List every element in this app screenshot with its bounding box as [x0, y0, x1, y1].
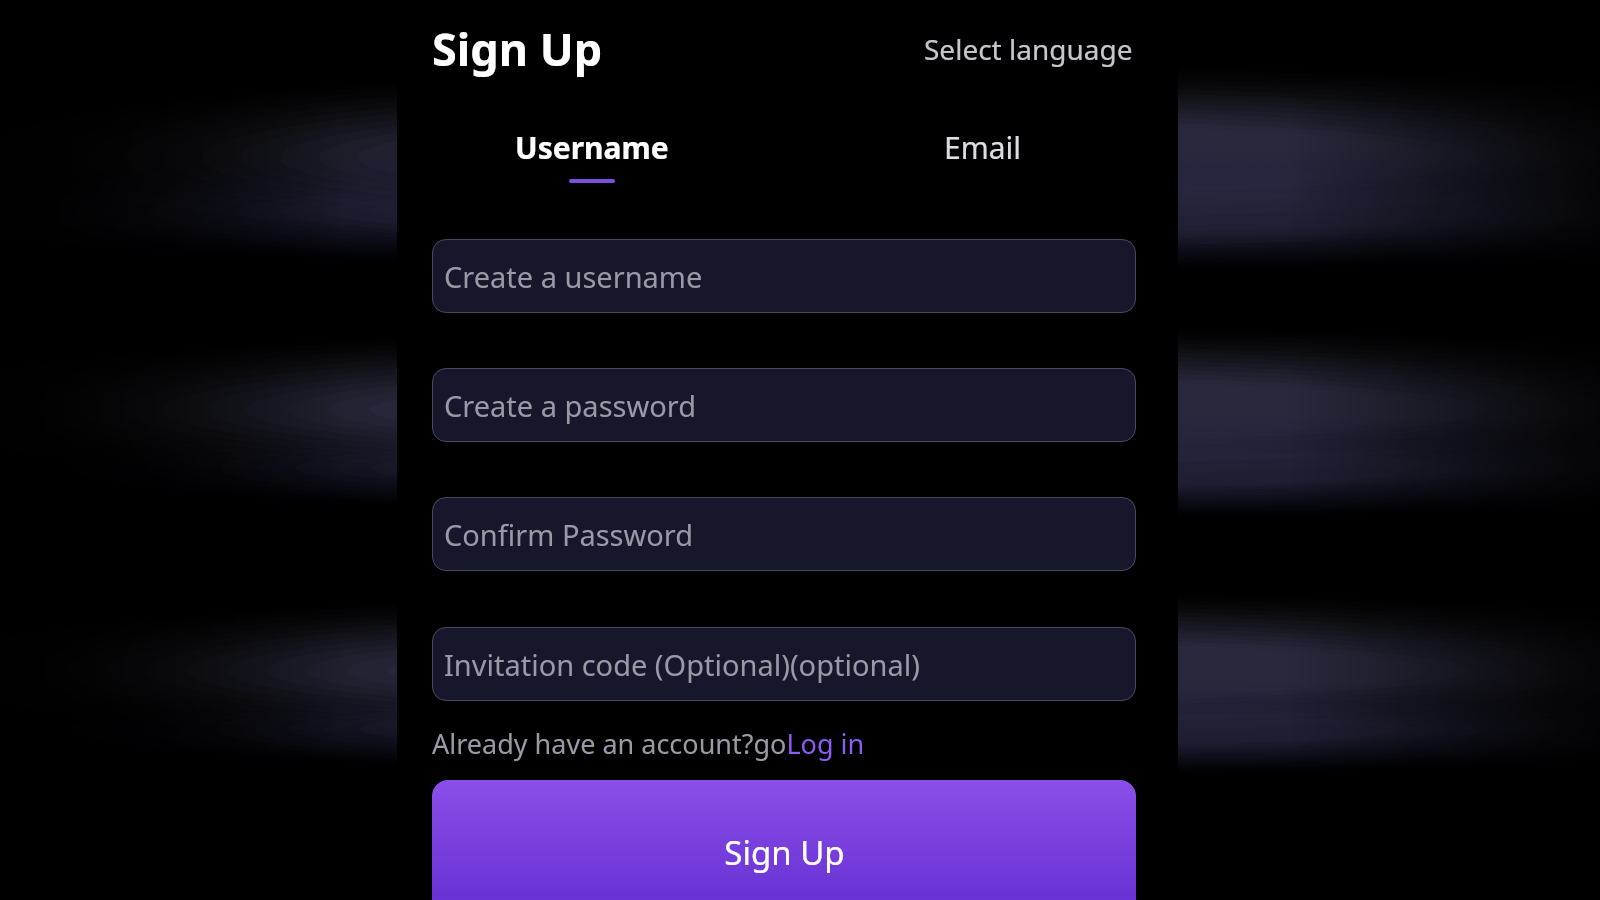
staticText: Confirm Password: [444, 515, 694, 554]
button[interactable]: Email: [787, 127, 1178, 168]
staticText: Sign Up: [432, 18, 603, 79]
button[interactable]: Username: [397, 127, 787, 183]
button[interactable]: Create a password: [432, 368, 1136, 442]
button[interactable]: Sign Up: [432, 780, 1136, 900]
button[interactable]: Select language: [922, 26, 1135, 72]
button[interactable]: Already have an account?goLog in: [432, 725, 865, 762]
button[interactable]: Invitation code (Optional)(optional): [432, 627, 1136, 701]
staticText: Username: [515, 127, 669, 168]
staticText: Create a password: [444, 386, 696, 425]
staticText: Already have an account?goLog in: [432, 725, 865, 762]
staticText: Email: [944, 127, 1022, 168]
button[interactable]: Confirm Password: [432, 497, 1136, 571]
staticText: Invitation code (Optional)(optional): [444, 645, 920, 684]
staticText: Select language: [924, 30, 1133, 68]
staticText: Sign Up: [724, 830, 845, 875]
button[interactable]: Create a username: [432, 239, 1136, 313]
staticText: Create a username: [444, 257, 703, 296]
